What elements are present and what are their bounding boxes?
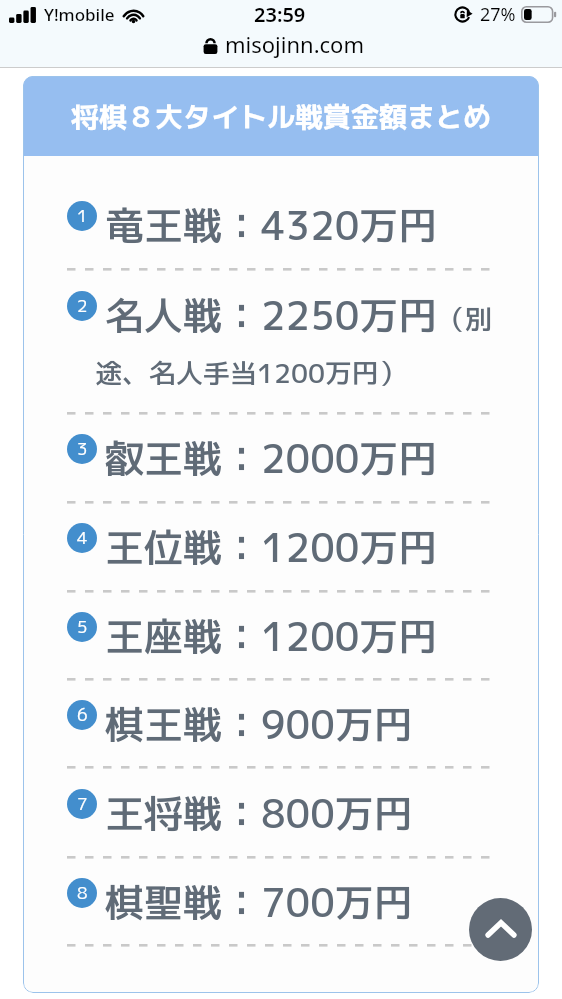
staticText: 5 [77, 615, 88, 639]
button[interactable]: Rank 2 [67, 291, 97, 321]
staticText: 1 [77, 204, 88, 228]
staticText: 棋王戦：900万円 [105, 697, 413, 751]
button[interactable]: Rank 3 [67, 434, 97, 464]
button[interactable]: Scroll to top [469, 898, 532, 961]
staticText: 23:59 [254, 1, 306, 28]
staticText: 27% [480, 2, 516, 27]
button[interactable]: Rank 4 [67, 523, 97, 553]
staticText: 6 [77, 703, 88, 727]
staticText: 名人戦：2250万円 [105, 288, 438, 342]
staticText: 棋聖戦：700万円 [105, 875, 413, 929]
button[interactable]: Rank 8 [67, 878, 97, 908]
staticText: 王将戦：800万円 [105, 786, 413, 840]
staticText: （別 [438, 300, 492, 338]
staticText: 2 [77, 294, 88, 318]
button[interactable]: Rank 6 [67, 700, 97, 730]
staticText: 3 [77, 437, 88, 461]
button[interactable]: Rank 1 [67, 201, 97, 231]
staticText: 4 [77, 526, 88, 550]
staticText: 叡王戦：2000万円 [105, 431, 438, 485]
staticText: misojinn.com [225, 29, 364, 59]
staticText: 王位戦：1200万円 [105, 520, 438, 574]
staticText: 途、名人手当1200万円） [95, 354, 407, 392]
button[interactable]: Rank 7 [67, 789, 97, 819]
staticText: 竜王戦：4320万円 [105, 198, 438, 252]
staticText: Y!mobile [44, 3, 115, 26]
staticText: 将棋８大タイトル戦賞金額まとめ [71, 97, 492, 136]
staticText: 7 [77, 792, 88, 816]
staticText: 王座戦：1200万円 [105, 609, 438, 663]
button[interactable]: Rank 5 [67, 612, 97, 642]
staticText: 8 [77, 881, 88, 905]
